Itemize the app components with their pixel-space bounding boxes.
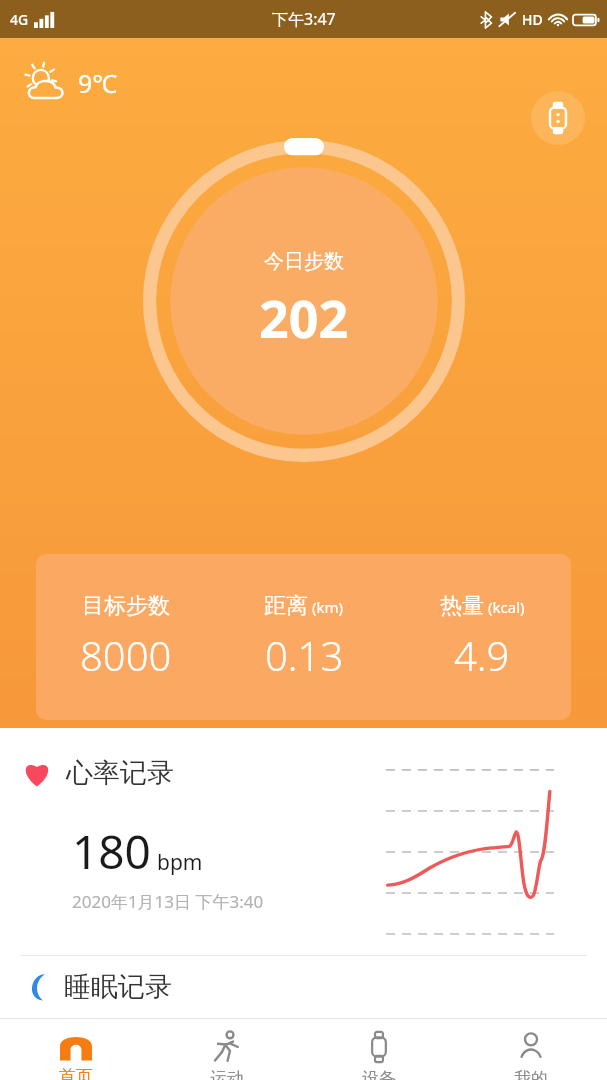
- staticText: (kcal): [488, 597, 525, 617]
- button[interactable]: 目标步数: [36, 554, 571, 720]
- staticText: 4G: [10, 10, 29, 29]
- staticText: 首页: [59, 1066, 93, 1080]
- staticText: 202: [259, 282, 349, 353]
- staticText: 下午3:47: [272, 8, 336, 30]
- button[interactable]: 睡眠记录: [0, 956, 607, 1018]
- staticText: HD: [522, 10, 543, 29]
- staticText: 设备: [362, 1068, 396, 1080]
- staticText: 180: [72, 820, 151, 883]
- staticText: 热量: [440, 592, 484, 620]
- button[interactable]: 今日步数: [143, 140, 465, 462]
- staticText: 心率记录: [66, 756, 174, 790]
- staticText: 我的: [514, 1068, 548, 1080]
- button[interactable]: Device: [531, 91, 585, 145]
- staticText: (km): [312, 597, 344, 617]
- staticText: 今日步数: [264, 249, 344, 274]
- staticText: 9℃: [78, 66, 118, 100]
- staticText: 4.9: [454, 628, 510, 682]
- button[interactable]: 设备: [303, 1019, 455, 1080]
- staticText: 8000: [80, 628, 172, 682]
- staticText: 目标步数: [82, 592, 170, 620]
- staticText: 0.13: [265, 628, 344, 682]
- staticText: 运动: [210, 1068, 244, 1080]
- button[interactable]: 首页: [0, 1019, 151, 1080]
- staticText: bpm: [157, 848, 203, 877]
- button[interactable]: 9℃: [16, 58, 122, 108]
- button[interactable]: 运动: [151, 1019, 303, 1080]
- staticText: 2020年1月13日 下午3:40: [72, 890, 264, 913]
- staticText: 距离: [264, 592, 308, 620]
- button[interactable]: 我的: [455, 1019, 607, 1080]
- button[interactable]: 心率记录: [0, 728, 607, 956]
- staticText: 睡眠记录: [64, 970, 172, 1004]
